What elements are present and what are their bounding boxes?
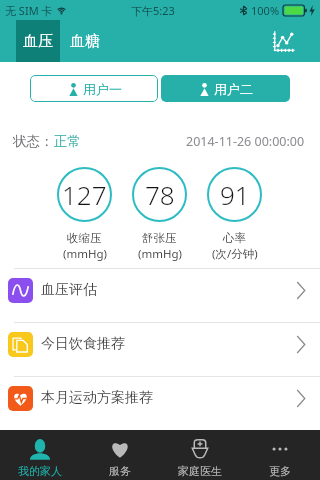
staticText: 100%	[251, 3, 280, 18]
button[interactable]: 用户一	[30, 75, 158, 102]
staticText: 本月运动方案推荐	[41, 389, 153, 407]
staticText: 状态：	[13, 133, 54, 150]
button[interactable]: 服务	[80, 430, 160, 480]
staticText: 更多	[269, 464, 291, 478]
staticText: 血压	[23, 32, 53, 51]
staticText: 收缩压	[67, 231, 102, 245]
staticText: 78	[145, 177, 175, 212]
staticText: 91	[220, 177, 250, 212]
staticText: 127	[62, 177, 107, 212]
staticText: 血糖	[70, 32, 100, 51]
staticText: 2014-11-26 00:00:00	[186, 133, 305, 150]
staticText: 我的家人	[18, 464, 62, 478]
button[interactable]: 更多	[240, 430, 320, 480]
staticText: 血压评估	[41, 281, 97, 299]
button[interactable]: 今日饮食推荐	[0, 323, 320, 376]
staticText: 用户一	[83, 81, 122, 97]
staticText: 家庭医生	[178, 464, 222, 478]
staticText: 舒张压	[142, 231, 177, 245]
button[interactable]: Chart	[263, 21, 303, 61]
button[interactable]: 家庭医生	[160, 430, 240, 480]
staticText: 下午5:23	[131, 3, 175, 18]
staticText: (次/分钟)	[212, 246, 258, 262]
staticText: 服务	[109, 464, 131, 478]
staticText: 正常	[54, 133, 81, 150]
button[interactable]: 本月运动方案推荐	[0, 377, 320, 430]
button[interactable]: 血压评估	[0, 269, 320, 322]
button[interactable]: 血糖	[60, 20, 110, 62]
button[interactable]: 我的家人	[0, 430, 80, 480]
staticText: (mmHg)	[63, 246, 107, 262]
staticText: 无 SIM 卡	[5, 3, 53, 18]
staticText: 今日饮食推荐	[41, 335, 125, 353]
staticText: (mmHg)	[138, 246, 182, 262]
button[interactable]: 用户二	[161, 75, 290, 102]
staticText: 用户二	[214, 81, 253, 97]
staticText: 心率	[223, 231, 246, 245]
button[interactable]: 血压	[16, 20, 60, 62]
